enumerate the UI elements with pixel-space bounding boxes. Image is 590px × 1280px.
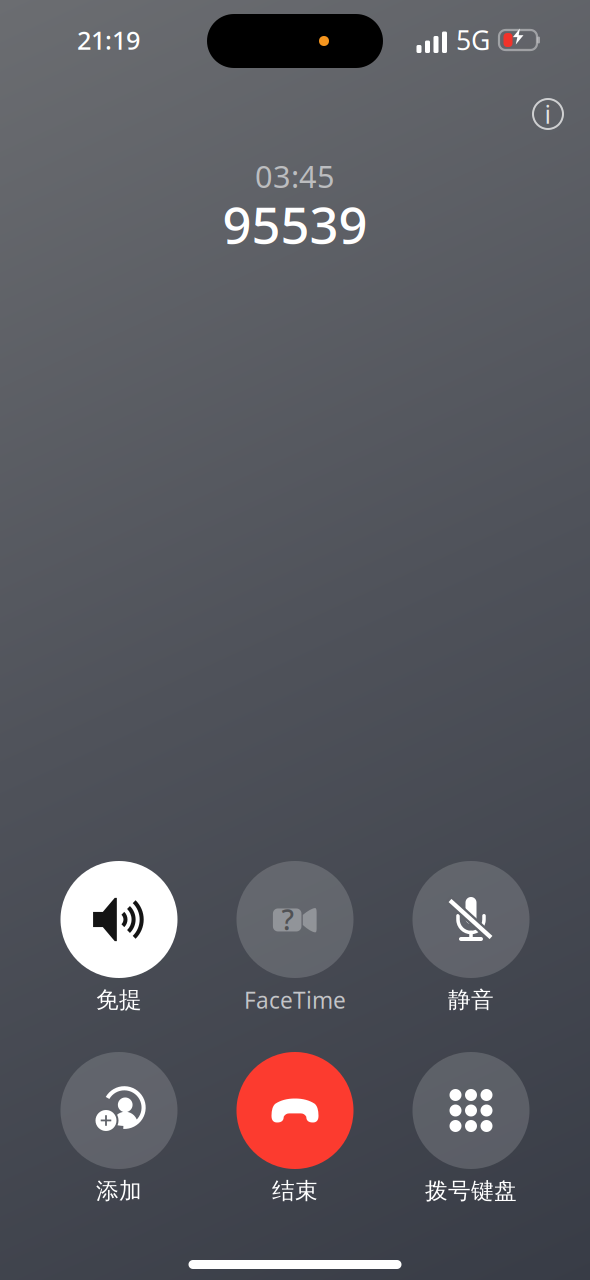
- staticText: FaceTime: [244, 985, 346, 1015]
- button[interactable]: 拨号键盘: [387, 1052, 555, 1213]
- button[interactable]: Call info: [526, 92, 570, 136]
- staticText: 免提: [96, 986, 142, 1014]
- staticText: 结束: [272, 1177, 318, 1205]
- button[interactable]: 静音: [387, 861, 555, 1022]
- button[interactable]: 免提: [35, 861, 203, 1022]
- staticText: 95539: [222, 190, 367, 258]
- staticText: 5G: [456, 22, 490, 58]
- staticText: 拨号键盘: [425, 1177, 517, 1205]
- staticText: 21:19: [77, 23, 140, 57]
- button[interactable]: ?: [211, 861, 379, 1022]
- staticText: 静音: [448, 986, 494, 1014]
- staticText: 添加: [96, 1177, 142, 1205]
- staticText: i: [544, 97, 551, 131]
- button[interactable]: 添加: [35, 1052, 203, 1213]
- staticText: ?: [281, 901, 294, 938]
- staticText: 03:45: [255, 156, 335, 196]
- button[interactable]: 结束: [211, 1052, 379, 1213]
